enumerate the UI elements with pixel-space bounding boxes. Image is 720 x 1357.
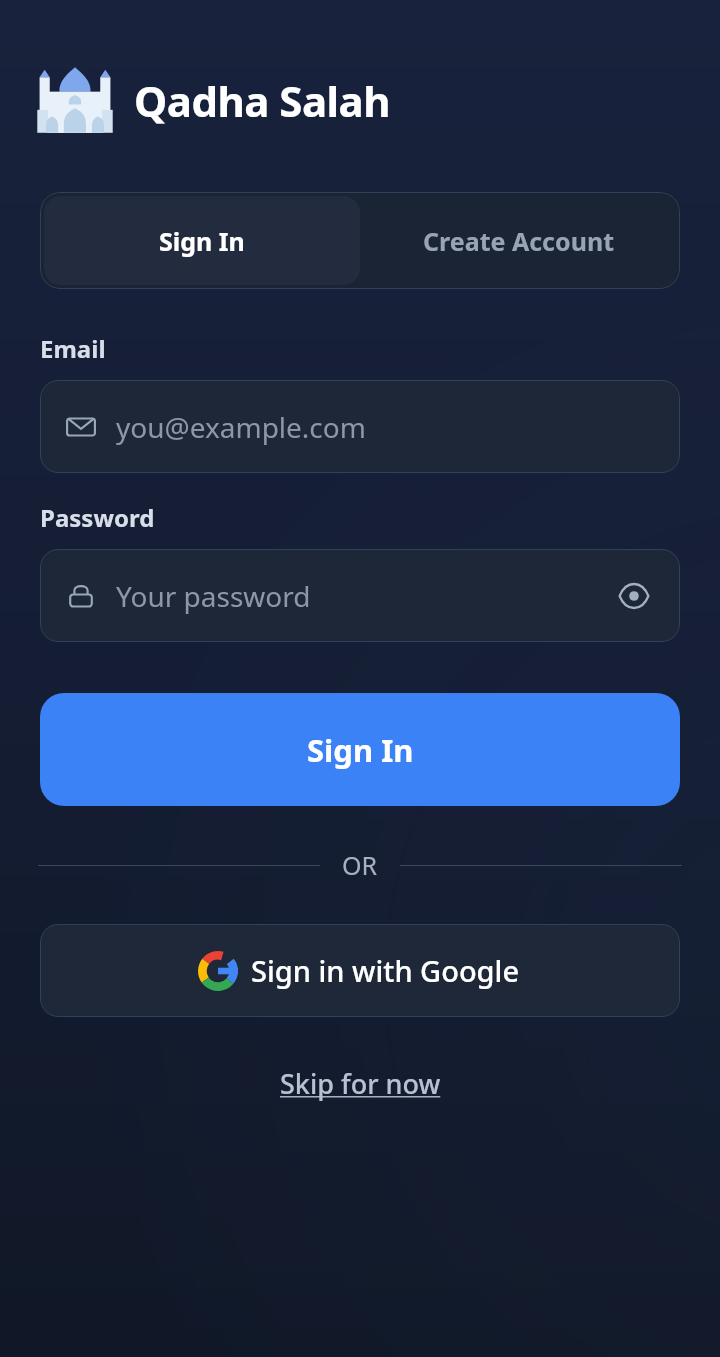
button[interactable]: Sign In (40, 693, 680, 806)
staticText: Email (40, 332, 106, 365)
staticText: Sign In (159, 224, 245, 258)
button[interactable]: Show password (612, 574, 656, 618)
button[interactable]: Your password (40, 549, 680, 642)
staticText: Sign in with Google (251, 951, 520, 990)
staticText: OR (342, 848, 378, 882)
staticText: Password (40, 501, 155, 534)
button[interactable]: Sign In (44, 196, 360, 285)
staticText: Create Account (423, 224, 614, 258)
staticText: Skip for now (280, 1065, 441, 1102)
button[interactable]: Create Account (360, 196, 676, 285)
staticText: Your password (116, 577, 612, 615)
staticText: you@example.com (116, 408, 366, 446)
staticText: Qadha Salah (134, 72, 391, 129)
staticText: Sign In (307, 729, 414, 771)
button[interactable]: Sign in with Google (40, 924, 680, 1017)
button[interactable]: Skip for now (268, 1059, 453, 1108)
button[interactable]: you@example.com (40, 380, 680, 473)
